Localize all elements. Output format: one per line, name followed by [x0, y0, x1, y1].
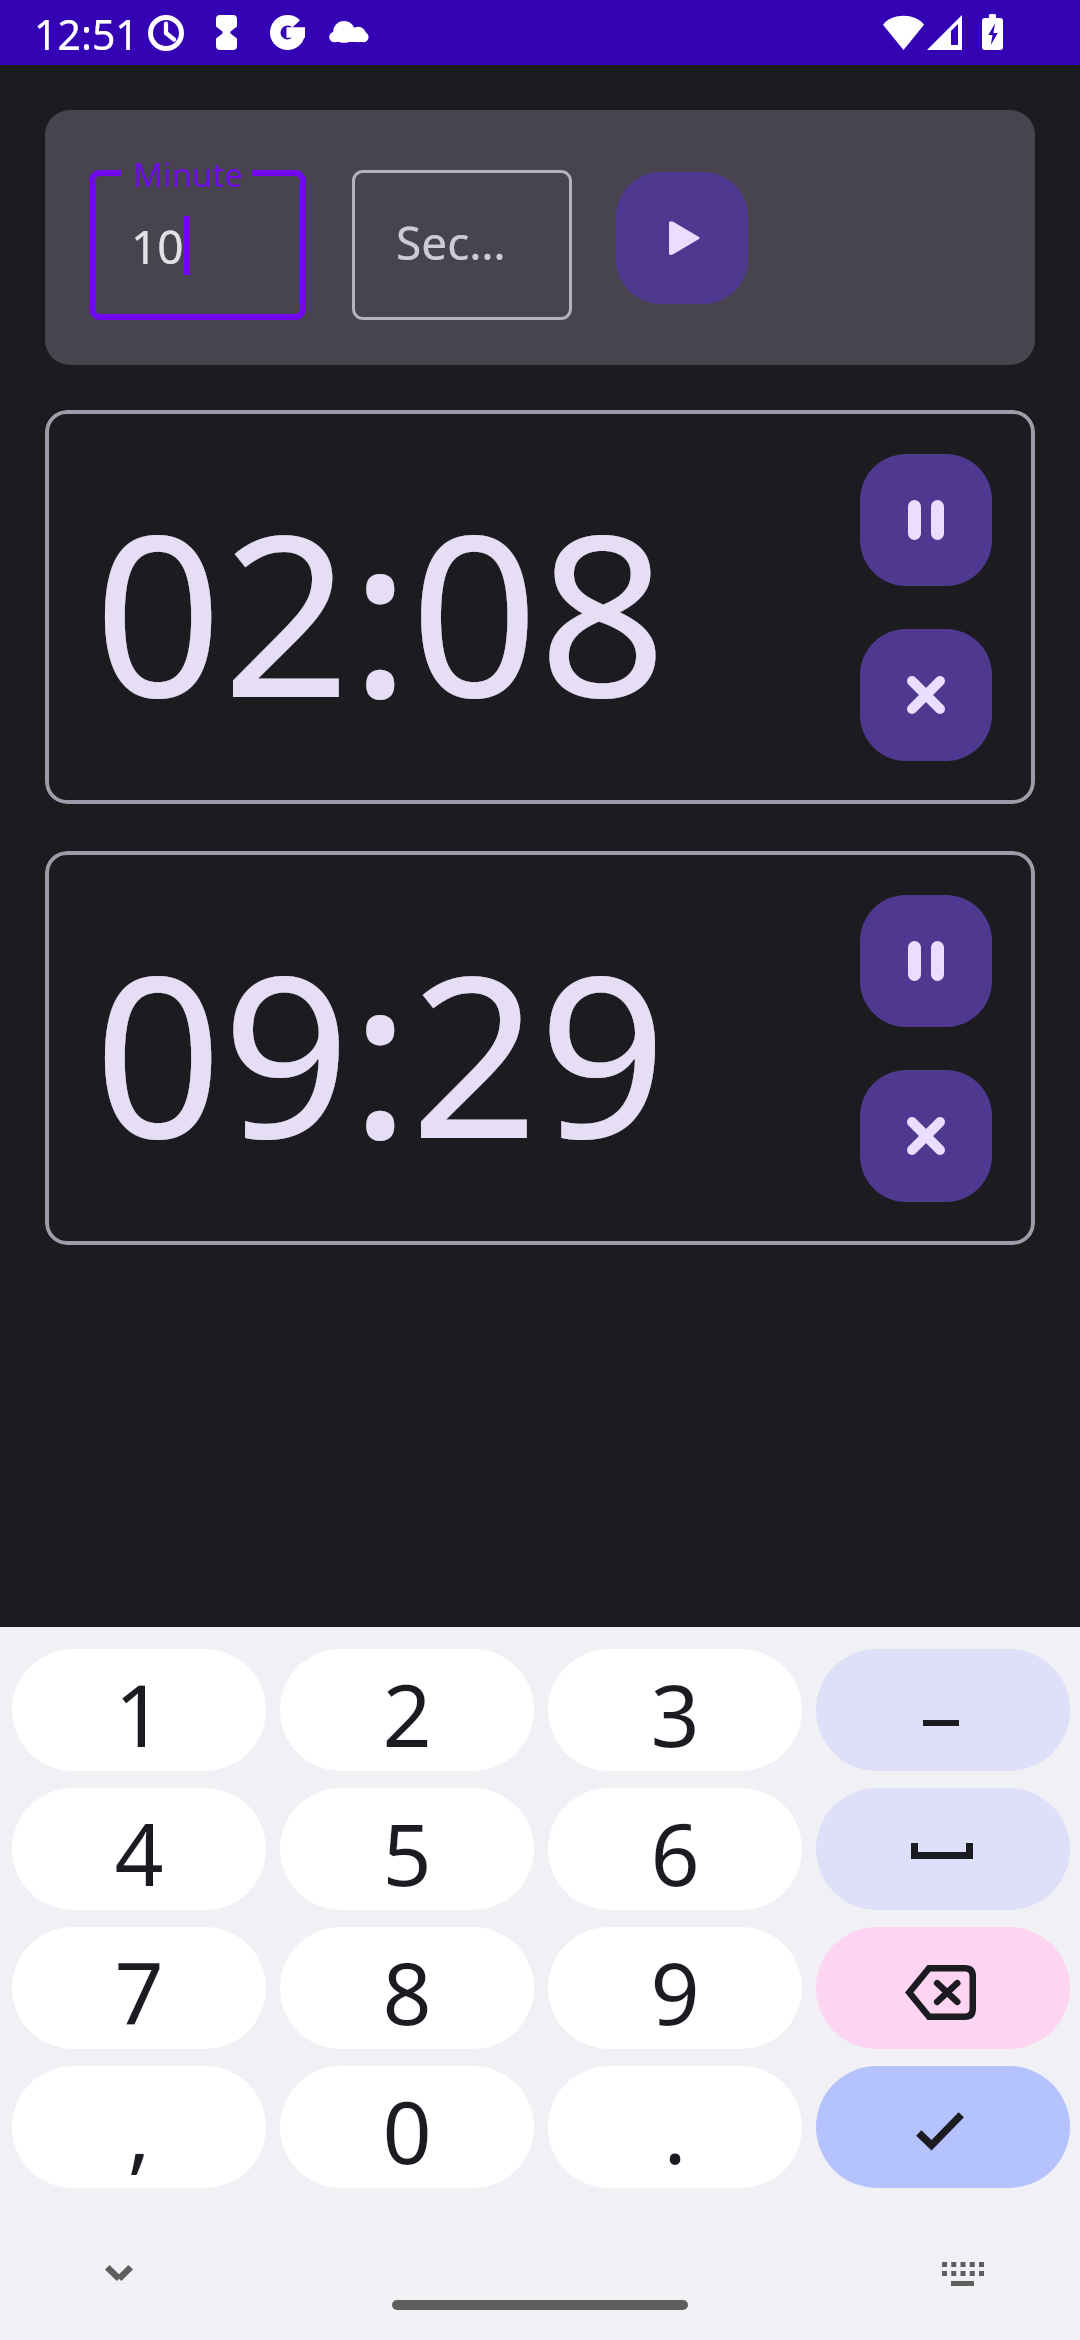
button[interactable]: Pause: [860, 895, 992, 1027]
staticText: 12:51: [34, 6, 139, 62]
other: Enter: [915, 2111, 965, 2149]
button[interactable]: Cancel: [860, 1070, 992, 1202]
button[interactable]: 10: [89, 170, 306, 320]
button[interactable]: 7: [12, 1927, 266, 2049]
staticText: 5: [382, 1794, 432, 1910]
button[interactable]: 0: [280, 2066, 534, 2188]
button[interactable]: 1: [12, 1649, 266, 1771]
staticText: ,: [127, 2072, 151, 2188]
button[interactable]: 02:08: [45, 410, 1035, 804]
staticText: 3: [650, 1655, 700, 1771]
button[interactable]: 6: [548, 1788, 802, 1910]
button[interactable]: Enter: [816, 2066, 1070, 2188]
button[interactable]: ,: [12, 2066, 266, 2188]
button[interactable]: Sec…: [352, 170, 572, 320]
staticText: 09:29: [94, 899, 667, 1204]
staticText: 1: [114, 1655, 164, 1771]
staticText: 7: [114, 1933, 164, 2049]
button[interactable]: Space: [816, 1788, 1070, 1910]
other: Hide keyboard: [104, 2264, 134, 2282]
staticText: 6: [650, 1794, 700, 1910]
button[interactable]: Start timer: [616, 172, 748, 304]
staticText: 2: [382, 1655, 432, 1771]
button[interactable]: .: [548, 2066, 802, 2188]
staticText: .: [663, 2072, 687, 2188]
staticText: 9: [650, 1933, 700, 2049]
button[interactable]: 8: [280, 1927, 534, 2049]
other: Space: [911, 1843, 973, 1859]
button[interactable]: 5: [280, 1788, 534, 1910]
staticText: 8: [382, 1933, 432, 2049]
staticText: Sec…: [396, 211, 506, 274]
button[interactable]: Cancel: [860, 629, 992, 761]
staticText: 10: [131, 215, 184, 278]
staticText: 02:08: [94, 458, 667, 763]
button[interactable]: Pause: [860, 454, 992, 586]
button[interactable]: 3: [548, 1649, 802, 1771]
other: Delete: [904, 1965, 976, 2020]
button[interactable]: 09:29: [45, 851, 1035, 1245]
staticText: 0: [382, 2072, 432, 2188]
button[interactable]: Delete: [816, 1927, 1070, 2049]
staticText: Minute: [133, 152, 243, 197]
button[interactable]: 2: [280, 1649, 534, 1771]
button[interactable]: 4: [12, 1788, 266, 1910]
button[interactable]: Minus: [816, 1649, 1070, 1771]
staticText: 4: [114, 1794, 164, 1910]
other: Switch keyboard: [942, 2262, 984, 2286]
button[interactable]: 9: [548, 1927, 802, 2049]
